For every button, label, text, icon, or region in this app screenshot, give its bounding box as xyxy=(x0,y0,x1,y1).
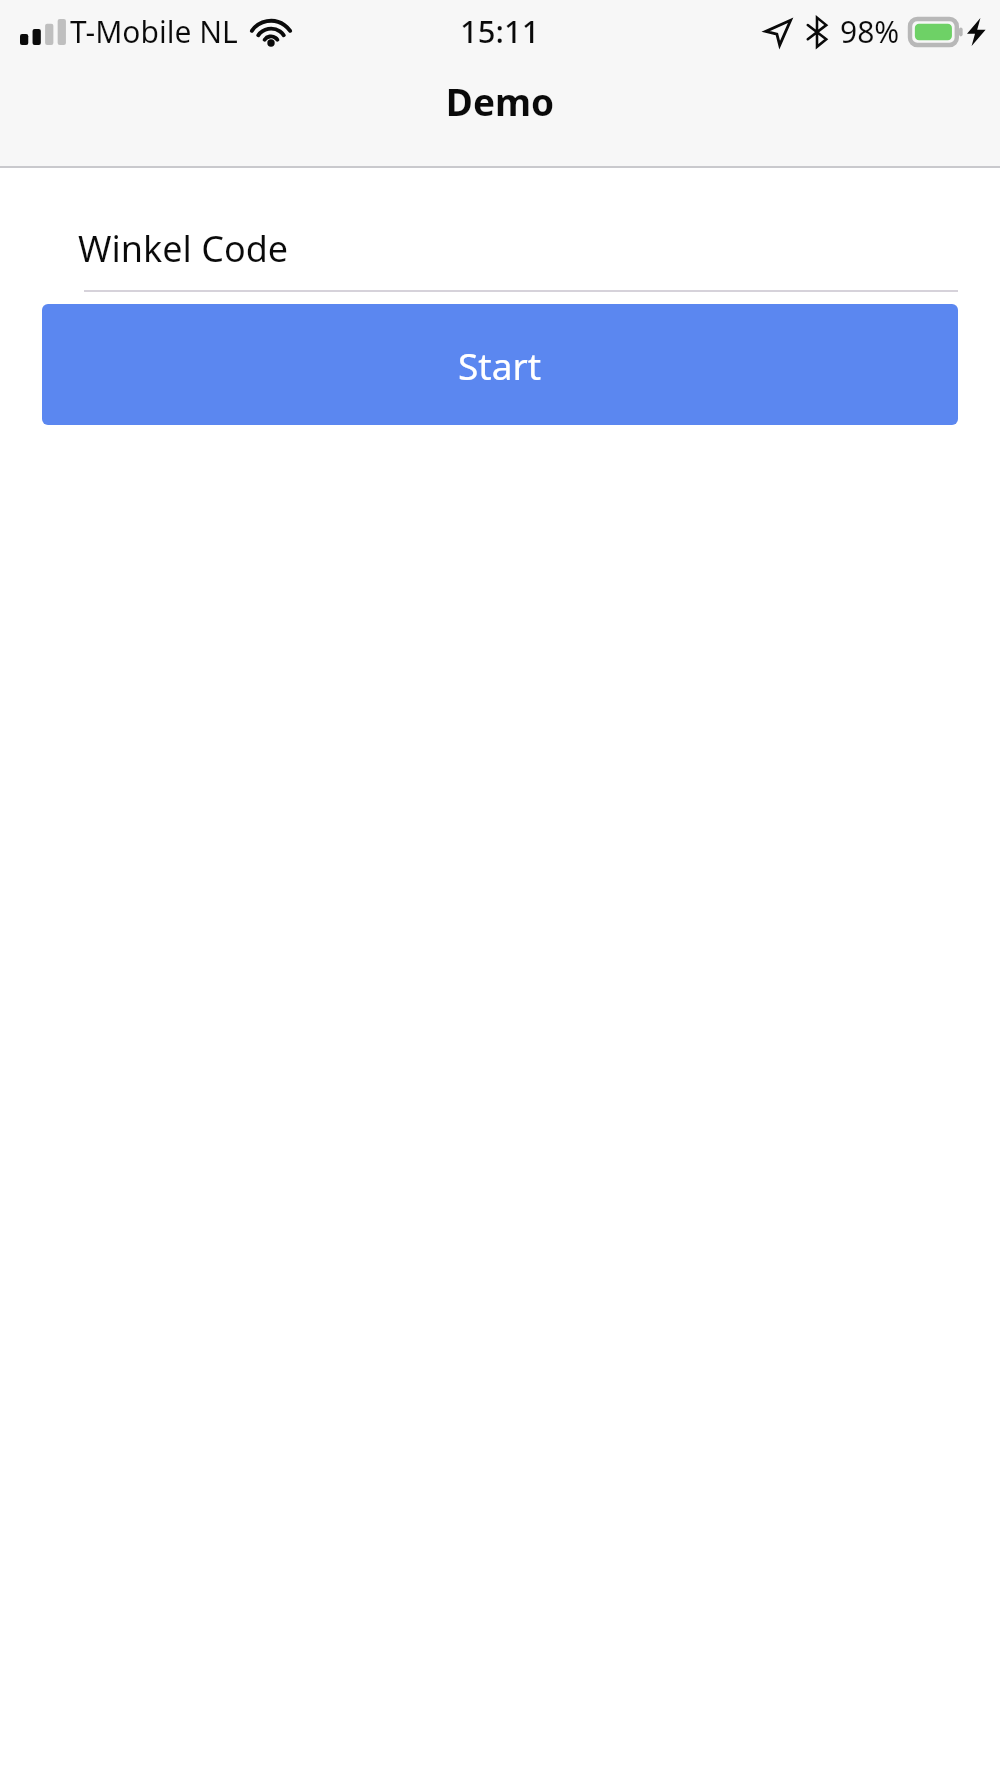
staticText: Demo xyxy=(0,76,1000,126)
button[interactable]: Start xyxy=(42,304,958,425)
button[interactable]: Winkel Code xyxy=(42,206,958,292)
staticText: 15:11 xyxy=(460,10,540,52)
staticText: 98% xyxy=(840,11,900,52)
staticText: T-Mobile NL xyxy=(70,11,238,52)
staticText: Start xyxy=(458,340,542,390)
staticText: Winkel Code xyxy=(78,224,289,273)
